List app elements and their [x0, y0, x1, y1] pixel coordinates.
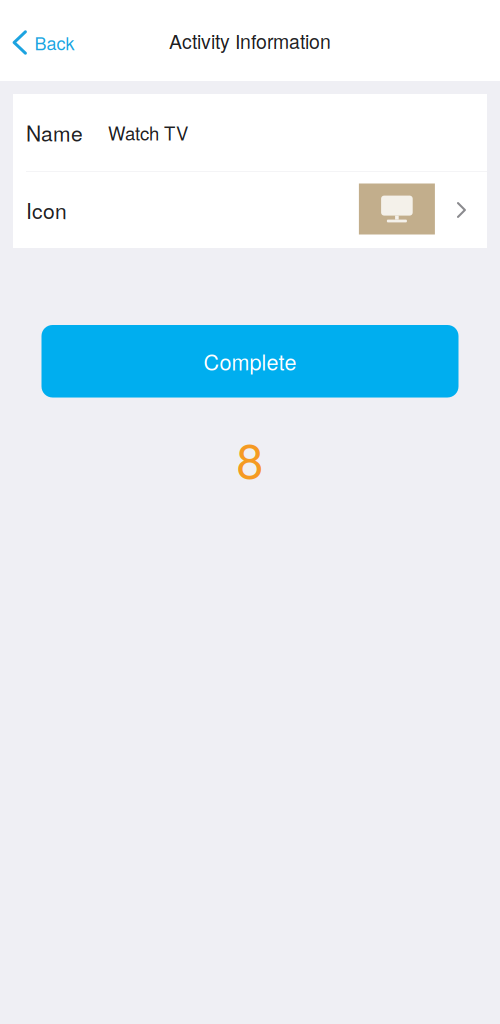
button[interactable]: Back	[0, 20, 87, 61]
button[interactable]: Complete	[41, 325, 458, 397]
staticText: Back	[35, 30, 75, 55]
staticText: Icon	[26, 195, 67, 225]
staticText: Name	[26, 117, 83, 148]
button[interactable]: Icon	[13, 172, 487, 248]
staticText: 8	[236, 423, 263, 492]
staticText: Watch TV	[108, 119, 188, 146]
staticText: Complete	[203, 346, 296, 377]
staticText: Activity Information	[169, 27, 331, 54]
